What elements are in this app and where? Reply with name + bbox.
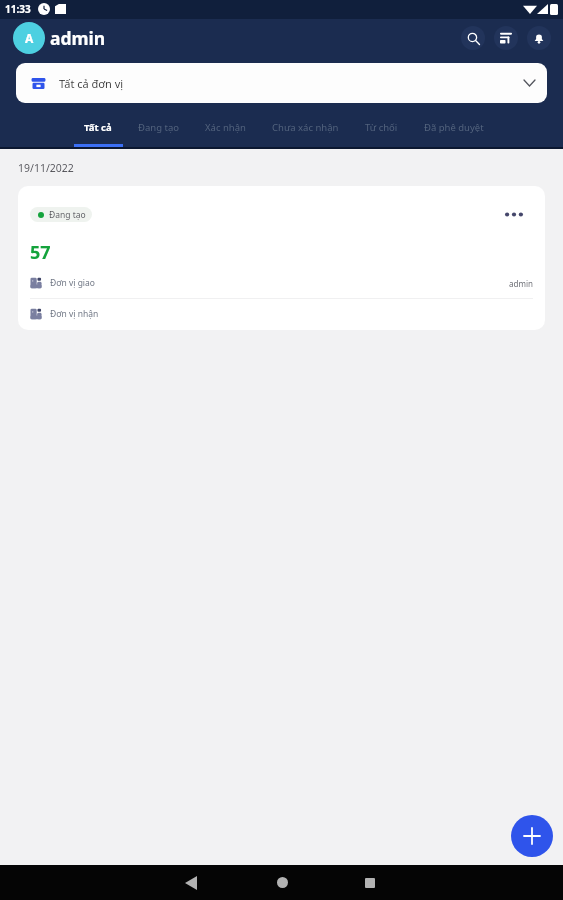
- button[interactable]: Đang tạo: [125, 116, 192, 147]
- button[interactable]: Tất cả đơn vị: [16, 63, 547, 103]
- button[interactable]: Back: [171, 865, 211, 900]
- staticText: Tất cả đơn vị: [59, 76, 124, 91]
- button[interactable]: Đang tạo: [18, 186, 545, 330]
- staticText: Chưa xác nhận: [272, 121, 339, 134]
- button[interactable]: Filter: [494, 26, 518, 50]
- staticText: admin: [509, 278, 533, 289]
- staticText: 19/11/2022: [18, 161, 74, 175]
- staticText: A: [25, 30, 34, 46]
- staticText: Xác nhận: [205, 121, 246, 134]
- button[interactable]: Search: [461, 26, 485, 50]
- button[interactable]: Chưa xác nhận: [259, 116, 352, 147]
- button[interactable]: Recents: [350, 865, 390, 900]
- staticText: Đã phê duyệt: [424, 121, 484, 134]
- button[interactable]: More options: [499, 208, 533, 221]
- staticText: Từ chối: [365, 121, 398, 134]
- staticText: Đơn vị giao: [50, 277, 95, 289]
- button[interactable]: Tất cả: [71, 116, 125, 147]
- button[interactable]: Add: [511, 815, 553, 857]
- staticText: 11:33: [5, 2, 31, 16]
- button[interactable]: Từ chối: [352, 116, 411, 147]
- button[interactable]: Đã phê duyệt: [411, 116, 497, 147]
- staticText: admin: [50, 26, 106, 50]
- staticText: 57: [30, 240, 51, 265]
- staticText: Đang tạo: [49, 209, 86, 221]
- button[interactable]: Xác nhận: [192, 116, 259, 147]
- staticText: Đơn vị nhận: [50, 308, 99, 320]
- button[interactable]: Notifications: [527, 26, 551, 50]
- staticText: Đang tạo: [138, 121, 179, 134]
- button[interactable]: Home: [262, 865, 302, 900]
- staticText: Tất cả: [84, 121, 112, 134]
